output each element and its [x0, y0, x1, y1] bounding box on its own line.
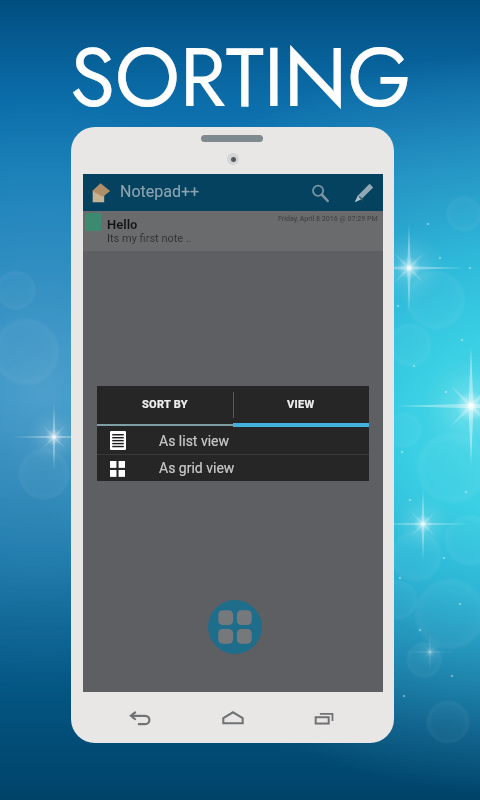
staticText: As list view: [159, 433, 230, 449]
button[interactable]: Hello: [83, 211, 383, 251]
button[interactable]: VIEW: [233, 386, 369, 423]
button[interactable]: SORT BY: [97, 386, 233, 423]
staticText: Notepad++: [120, 182, 200, 201]
button[interactable]: Recent apps: [302, 696, 346, 740]
staticText: Its my first note ..: [107, 232, 192, 245]
staticText: VIEW: [287, 398, 315, 411]
staticText: SORT BY: [142, 398, 188, 411]
button[interactable]: As list view: [97, 427, 369, 454]
button[interactable]: New note: [347, 176, 381, 210]
staticText: Friday, April 8 2016 @ 07:29 PM: [278, 215, 378, 223]
staticText: As grid view: [159, 460, 235, 476]
staticText: SORTING: [70, 18, 411, 136]
button[interactable]: Search: [303, 176, 337, 210]
button[interactable]: Home: [211, 696, 255, 740]
button[interactable]: As grid view: [97, 455, 369, 481]
staticText: Hello: [107, 217, 138, 232]
button[interactable]: Back: [119, 696, 163, 740]
